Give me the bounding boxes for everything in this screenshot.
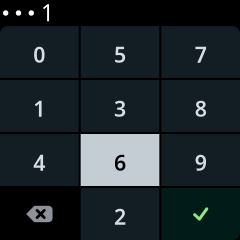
staticText: 1 xyxy=(33,94,45,123)
staticText: 9 xyxy=(195,148,207,177)
staticText: 4 xyxy=(33,148,45,177)
button[interactable]: Confirm xyxy=(161,188,240,240)
staticText: 0 xyxy=(33,40,45,69)
staticText: 2 xyxy=(114,202,126,231)
staticText: 5 xyxy=(114,40,126,69)
button[interactable]: 3 xyxy=(81,80,159,132)
button[interactable]: 7 xyxy=(161,26,240,78)
button[interactable]: 6 xyxy=(81,134,159,186)
staticText: 3 xyxy=(114,94,126,123)
staticText: 6 xyxy=(114,148,126,177)
button[interactable]: 5 xyxy=(81,26,159,78)
button[interactable]: 0 xyxy=(0,26,79,78)
button[interactable]: 4 xyxy=(0,134,79,186)
staticText: 7 xyxy=(195,40,207,69)
button[interactable]: 8 xyxy=(161,80,240,132)
staticText: 1 xyxy=(41,0,54,27)
button[interactable]: 1 xyxy=(0,80,79,132)
button[interactable]: 2 xyxy=(81,188,159,240)
button[interactable]: 9 xyxy=(161,134,240,186)
staticText: 8 xyxy=(195,94,207,123)
button[interactable]: Delete xyxy=(0,188,79,240)
